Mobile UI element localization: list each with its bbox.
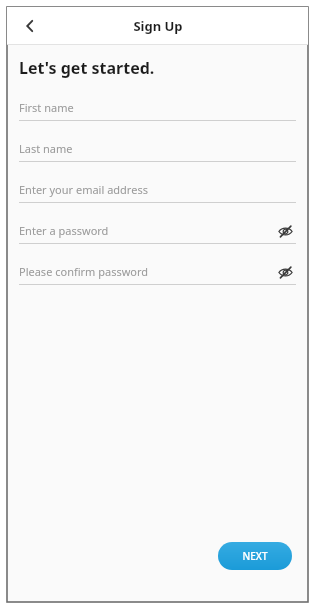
button[interactable]: First name	[19, 95, 296, 136]
button[interactable]: NEXT	[218, 542, 292, 570]
staticText: Sign Up	[133, 17, 183, 35]
staticText: Enter your email address	[19, 182, 296, 197]
button[interactable]: Show password	[274, 220, 296, 242]
button[interactable]: Show password	[274, 261, 296, 283]
staticText: Please confirm password	[19, 264, 274, 279]
button[interactable]: Enter a password	[19, 218, 296, 259]
staticText: First name	[19, 100, 296, 115]
button[interactable]: Back	[15, 11, 45, 41]
button[interactable]: Last name	[19, 136, 296, 177]
staticText: Let's get started.	[19, 57, 155, 79]
button[interactable]: Enter your email address	[19, 177, 296, 218]
staticText: NEXT	[242, 549, 268, 563]
button[interactable]: Please confirm password	[19, 259, 296, 300]
staticText: Last name	[19, 141, 296, 156]
staticText: Enter a password	[19, 223, 274, 238]
